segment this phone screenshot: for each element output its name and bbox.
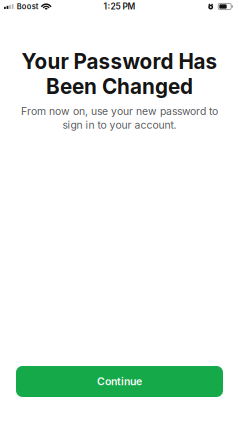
staticText: Been Changed <box>46 74 193 99</box>
button[interactable]: Continue <box>16 366 223 397</box>
staticText: From now on, use your new password to <box>21 105 218 118</box>
staticText: sign in to your account. <box>62 119 176 131</box>
staticText: Your Password Has <box>21 49 217 74</box>
staticText: Boost <box>17 2 39 11</box>
staticText: Continue <box>97 375 142 388</box>
staticText: 1:25 PM <box>103 1 135 12</box>
